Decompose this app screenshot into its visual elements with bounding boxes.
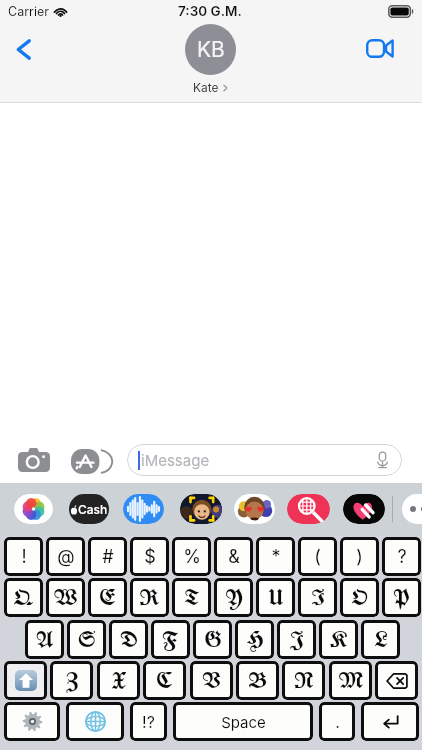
staticText: Carrier — [8, 4, 49, 19]
staticText: 𝕬 — [36, 623, 54, 656]
button[interactable]: ? — [382, 537, 421, 576]
staticText: 𝕳 — [246, 623, 264, 656]
staticText: & — [228, 546, 240, 568]
button[interactable]: 𝕿 — [172, 578, 211, 617]
button[interactable]: Change keyboard — [66, 702, 124, 741]
button[interactable]: 𝕷 — [361, 620, 400, 659]
button[interactable]: GIF search — [287, 494, 330, 524]
staticText: 7:30 G.M. — [178, 3, 242, 19]
button[interactable]: & — [214, 537, 253, 576]
button[interactable]: % — [172, 537, 211, 576]
staticText: !? — [142, 712, 155, 731]
button[interactable]: !? — [130, 702, 167, 741]
staticText: 𝕰 — [99, 581, 116, 614]
button[interactable]: FaceTime video call — [363, 34, 396, 62]
staticText: 𝕮 — [156, 664, 173, 697]
button[interactable]: Back — [4, 33, 42, 65]
staticText: ( — [314, 546, 321, 568]
staticText: iMessage — [141, 451, 210, 469]
staticText: 𝕽 — [139, 581, 160, 614]
button[interactable]: Stickers — [234, 494, 275, 524]
button[interactable]: Music — [343, 494, 385, 524]
button[interactable]: Backspace — [375, 661, 418, 700]
staticText: 𝖁 — [202, 664, 221, 697]
staticText: 𝕱 — [162, 623, 179, 656]
button[interactable]: 𝕳 — [235, 620, 274, 659]
button[interactable]: Apps — [71, 448, 107, 474]
button[interactable]: . — [319, 702, 355, 741]
button[interactable]: Camera — [18, 447, 54, 473]
button[interactable]: 𝕻 — [382, 578, 421, 617]
staticText: 𝕭 — [248, 664, 267, 697]
staticText: 𝕴 — [311, 581, 325, 614]
staticText: 𝕶 — [329, 623, 348, 656]
button[interactable]: Space — [173, 702, 313, 741]
button[interactable]: $ — [130, 537, 169, 576]
button[interactable]: 𝖅 — [50, 661, 93, 700]
button[interactable]: 𝖃 — [97, 661, 140, 700]
staticText: KB — [197, 37, 225, 62]
button[interactable]: 𝕺 — [340, 578, 379, 617]
button[interactable]: ! — [4, 537, 43, 576]
button[interactable]: 𝕰 — [88, 578, 127, 617]
button[interactable]: @ — [46, 537, 85, 576]
staticText: % — [183, 546, 201, 568]
staticText: 𝕼 — [13, 581, 34, 614]
staticText: 𝕹 — [294, 664, 314, 697]
button[interactable]: Return — [361, 702, 419, 741]
staticText: 𝕿 — [184, 581, 200, 614]
staticText: 𝕵 — [289, 623, 304, 656]
staticText: 𝖄 — [225, 581, 243, 614]
staticText: 𝖂 — [53, 581, 78, 614]
button[interactable]: More apps — [402, 494, 422, 524]
staticText: 𝖅 — [65, 664, 79, 697]
button[interactable]: 𝕼 — [4, 578, 43, 617]
staticText: 𝕺 — [351, 581, 368, 614]
button[interactable]: 𝕶 — [319, 620, 358, 659]
staticText: Cash — [78, 502, 108, 517]
staticText: ) — [356, 546, 363, 568]
staticText: . — [335, 712, 340, 731]
button[interactable]: # — [88, 537, 127, 576]
staticText: 𝖀 — [268, 581, 284, 614]
staticText: 𝕸 — [338, 664, 364, 697]
button[interactable]: Memoji — [180, 494, 222, 524]
button[interactable]: Photos — [14, 494, 53, 524]
button[interactable]: 𝕭 — [236, 661, 279, 700]
button[interactable]: 𝖁 — [190, 661, 233, 700]
button[interactable]: KB — [185, 24, 236, 95]
button[interactable]: 𝕱 — [151, 620, 190, 659]
button[interactable]: 𝕯 — [109, 620, 148, 659]
button[interactable]: 𝖂 — [46, 578, 85, 617]
staticText: ! — [21, 546, 27, 568]
button[interactable]: Shift — [4, 661, 47, 700]
button[interactable]: 𝕬 — [25, 620, 64, 659]
staticText: 𝕲 — [204, 623, 222, 656]
staticText: # — [102, 546, 114, 568]
button[interactable]: 𝕾 — [67, 620, 106, 659]
button[interactable]: 𝕹 — [282, 661, 325, 700]
staticText: $ — [144, 546, 156, 568]
staticText: 𝕯 — [120, 623, 138, 656]
button[interactable]: 𝕴 — [298, 578, 337, 617]
button[interactable]: 𝕽 — [130, 578, 169, 617]
button[interactable]: * — [256, 537, 295, 576]
staticText: Kate — [193, 80, 219, 95]
button[interactable]: 𝖄 — [214, 578, 253, 617]
button[interactable]: 𝕵 — [277, 620, 316, 659]
staticText: 𝕷 — [374, 623, 388, 656]
staticText: 𝕾 — [78, 623, 96, 656]
button[interactable]: 𝕮 — [143, 661, 186, 700]
staticText: Space — [221, 713, 266, 731]
staticText: 𝕻 — [393, 581, 410, 614]
button[interactable]: 𝕸 — [329, 661, 372, 700]
button[interactable]: 𝖀 — [256, 578, 295, 617]
button[interactable]: ( — [298, 537, 337, 576]
button[interactable]: ) — [340, 537, 379, 576]
button[interactable]: 𝕲 — [193, 620, 232, 659]
staticText: ? — [397, 546, 407, 568]
button[interactable]: Audio message — [123, 494, 164, 524]
button[interactable]: Apple Cash — [69, 494, 109, 524]
button[interactable]: iMessage — [127, 444, 402, 476]
button[interactable]: Settings — [4, 702, 60, 741]
